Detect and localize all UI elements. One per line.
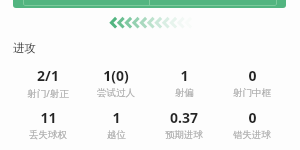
staticText: 0 xyxy=(248,66,257,85)
staticText: 丢失球权 xyxy=(29,129,67,141)
staticText: 0.37 xyxy=(170,108,198,127)
staticText: 射门中框 xyxy=(233,87,271,99)
staticText: 预期进球 xyxy=(165,129,203,141)
staticText: 2/1 xyxy=(37,66,59,85)
staticText: 1 xyxy=(112,108,121,127)
staticText: 1 xyxy=(180,66,189,85)
button[interactable]: 0 xyxy=(218,108,286,141)
button[interactable]: 1(0) xyxy=(82,66,150,99)
staticText: 尝试过人 xyxy=(97,87,135,99)
button[interactable]: 2/1 xyxy=(14,66,82,100)
staticText: 越位 xyxy=(107,129,126,141)
button[interactable]: 0.37 xyxy=(150,108,218,141)
button[interactable]: 1 xyxy=(150,66,218,99)
button[interactable]: 1 xyxy=(82,108,150,141)
button[interactable]: 0 xyxy=(218,66,286,99)
staticText: 射门/射正 xyxy=(27,87,69,100)
staticText: 0 xyxy=(248,108,257,127)
button[interactable]: 进攻 xyxy=(13,41,36,55)
button[interactable]: 11 xyxy=(14,108,82,141)
button[interactable]: Swipe left for more stats xyxy=(107,14,193,31)
button[interactable]: Possession banner xyxy=(13,0,286,8)
staticText: 错失进球 xyxy=(233,129,271,141)
staticText: 11 xyxy=(40,108,57,127)
staticText: 射偏 xyxy=(175,87,194,99)
staticText: 1(0) xyxy=(103,66,129,85)
